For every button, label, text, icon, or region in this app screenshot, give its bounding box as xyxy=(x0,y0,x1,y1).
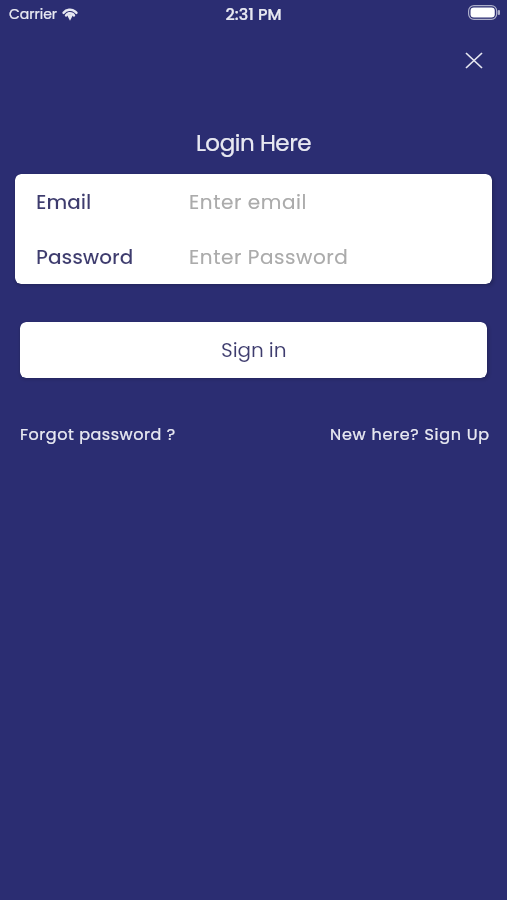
staticText: 2:31 PM xyxy=(0,3,507,25)
staticText: New here? Sign Up xyxy=(330,423,490,445)
staticText: Forgot password ? xyxy=(20,423,176,445)
button[interactable]: Email xyxy=(15,174,492,229)
button[interactable]: Forgot password ? xyxy=(20,423,176,445)
button[interactable]: Close xyxy=(455,42,492,79)
staticText: Email xyxy=(36,188,189,216)
staticText: Enter Password xyxy=(189,243,349,271)
staticText: Sign in xyxy=(221,336,287,364)
staticText: Password xyxy=(36,243,189,271)
button[interactable]: Sign in xyxy=(20,322,487,378)
staticText: Enter email xyxy=(189,188,307,216)
staticText: Carrier xyxy=(9,4,58,24)
button[interactable]: New here? Sign Up xyxy=(330,423,490,445)
staticText: Login Here xyxy=(0,127,507,159)
button[interactable]: Password xyxy=(15,229,492,284)
